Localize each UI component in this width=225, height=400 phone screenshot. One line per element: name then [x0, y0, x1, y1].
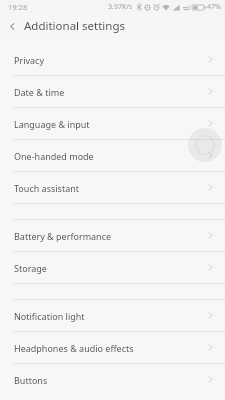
staticText: 19:28	[8, 2, 28, 12]
button[interactable]: Buttons	[0, 364, 225, 395]
staticText: One-handed mode	[14, 150, 94, 162]
staticText: Additional settings	[24, 18, 126, 34]
staticText: Battery & performance	[14, 230, 112, 242]
staticText: Storage	[14, 262, 47, 274]
staticText: Privacy	[14, 54, 45, 66]
button[interactable]: Date & time	[0, 76, 225, 107]
button[interactable]: Touch assistant	[0, 172, 225, 203]
staticText: Date & time	[14, 86, 65, 98]
staticText: 47%	[207, 2, 221, 12]
button[interactable]: Storage	[0, 252, 225, 283]
button[interactable]: Language & input	[0, 108, 225, 139]
button[interactable]: Headphones & audio effects	[0, 332, 225, 363]
button[interactable]: Quick ball	[188, 128, 222, 162]
staticText: Notification light	[14, 310, 85, 322]
staticText: Touch assistant	[14, 182, 80, 194]
staticText: Language & input	[14, 118, 90, 130]
staticText: 3.97K/s	[108, 2, 133, 12]
staticText: Headphones & audio effects	[14, 342, 134, 354]
button[interactable]: Notification light	[0, 300, 225, 331]
button[interactable]: One-handed mode	[0, 140, 225, 171]
button[interactable]: Privacy	[0, 44, 225, 75]
button[interactable]: Back	[0, 14, 24, 38]
button[interactable]: Battery & performance	[0, 220, 225, 251]
staticText: Buttons	[14, 374, 48, 386]
